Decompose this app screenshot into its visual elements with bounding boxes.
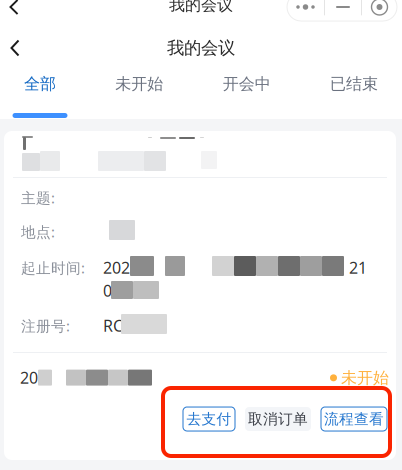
button[interactable]: 去支付 <box>183 407 235 431</box>
button[interactable]: 取消订单 <box>245 407 311 431</box>
staticText: 未开始 <box>115 74 163 94</box>
staticText: 流程查看 <box>324 410 384 428</box>
staticText: 地点: <box>21 222 55 241</box>
button[interactable]: 未开始 <box>115 74 163 119</box>
button[interactable]: Back <box>1 0 27 18</box>
button[interactable]: More <box>287 0 324 21</box>
staticText: 0 <box>103 280 112 301</box>
staticText: RC <box>103 315 123 336</box>
button[interactable]: 开会中 <box>223 74 271 119</box>
staticText: 20 <box>20 367 38 388</box>
staticText: 全部 <box>24 74 56 94</box>
staticText: 起止时间: <box>21 258 85 277</box>
staticText: 注册号: <box>21 316 70 335</box>
button[interactable]: 已结束 <box>330 74 378 119</box>
staticText: 开会中 <box>223 74 271 94</box>
staticText: 未开始 <box>341 368 389 388</box>
staticText: 21 <box>349 257 367 278</box>
button[interactable]: 流程查看 <box>321 407 387 431</box>
staticText: 我的会议 <box>169 0 233 15</box>
button[interactable]: Back <box>0 28 34 68</box>
staticText: 去支付 <box>186 410 231 428</box>
button[interactable]: Close <box>362 0 397 21</box>
staticText: 202 <box>103 257 130 278</box>
button[interactable]: 全部 <box>24 74 56 119</box>
staticText: 我的会议 <box>167 37 235 59</box>
staticText: 主题: <box>21 188 55 207</box>
staticText: 取消订单 <box>248 410 308 428</box>
button[interactable]: Minimize <box>325 0 361 21</box>
staticText: 已结束 <box>330 74 378 94</box>
